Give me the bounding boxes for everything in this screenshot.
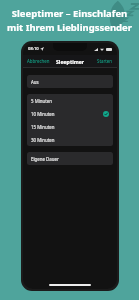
other: Sleep icon bbox=[97, 0, 137, 32]
staticText: Abbrechen bbox=[27, 58, 50, 64]
button[interactable]: Abbrechen bbox=[23, 56, 54, 66]
staticText: mit Ihrem Lieblingssender bbox=[0, 21, 139, 34]
staticText: Sleeptimer bbox=[56, 58, 85, 65]
staticText: Sleeptimer – Einschlafen bbox=[0, 7, 139, 20]
staticText: 30 Minuten bbox=[31, 137, 55, 143]
other: Selected bbox=[103, 111, 109, 117]
button[interactable]: 15 Minuten bbox=[27, 120, 113, 133]
button[interactable]: Aus bbox=[27, 75, 113, 88]
staticText: 15 Minuten bbox=[31, 124, 55, 130]
staticText: 08:10 bbox=[28, 46, 39, 52]
button[interactable]: 10 Minuten bbox=[27, 107, 113, 120]
staticText: 5 Minuten bbox=[31, 98, 52, 104]
button[interactable]: 30 Minuten bbox=[27, 133, 113, 146]
staticText: Aus bbox=[31, 79, 39, 85]
staticText: Eigene Dauer bbox=[31, 156, 59, 162]
staticText: Starten bbox=[97, 58, 113, 64]
button[interactable]: Starten bbox=[93, 56, 117, 66]
button[interactable]: 5 Minuten bbox=[27, 94, 113, 107]
staticText: 10 Minuten bbox=[31, 111, 55, 117]
button[interactable]: Eigene Dauer bbox=[27, 152, 113, 165]
